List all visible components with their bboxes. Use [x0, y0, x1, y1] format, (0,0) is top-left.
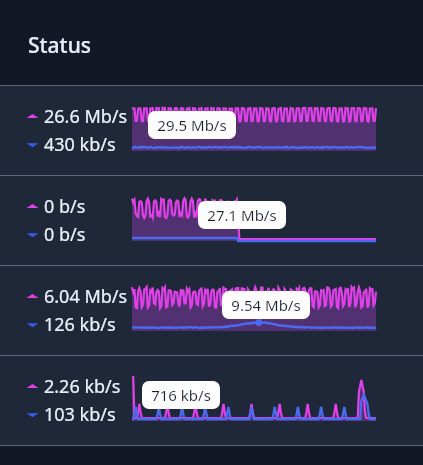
- button[interactable]: 26.6 Mb/s: [0, 86, 423, 175]
- staticText: 27.1 Mb/s: [207, 205, 277, 225]
- button[interactable]: 2.26 kb/s: [0, 356, 423, 445]
- staticText: 716 kb/s: [151, 385, 211, 405]
- staticText: 0 b/s: [44, 222, 86, 247]
- staticText: 0 b/s: [44, 194, 86, 219]
- staticText: 2.26 kb/s: [44, 374, 121, 399]
- staticText: 9.54 Mb/s: [231, 295, 301, 315]
- staticText: Status: [28, 31, 92, 60]
- button[interactable]: 0 b/s: [0, 176, 423, 265]
- staticText: 126 kb/s: [44, 312, 116, 337]
- staticText: 430 kb/s: [44, 132, 116, 157]
- staticText: 103 kb/s: [44, 402, 116, 427]
- staticText: 6.04 Mb/s: [44, 284, 128, 309]
- staticText: 29.5 Mb/s: [157, 115, 227, 135]
- button[interactable]: 6.04 Mb/s: [0, 266, 423, 355]
- staticText: 26.6 Mb/s: [44, 104, 128, 129]
